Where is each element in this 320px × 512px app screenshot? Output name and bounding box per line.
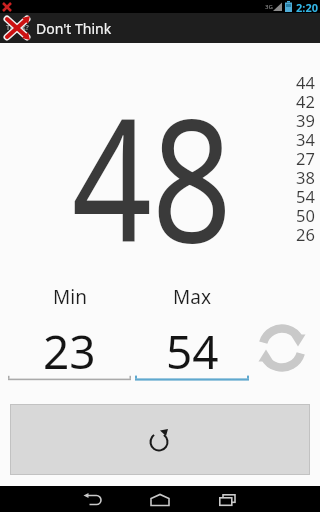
staticText: Think? xyxy=(6,23,29,33)
staticText: 44 42 39 34 27 38 54 50 26 xyxy=(262,71,315,246)
button[interactable]: 23 xyxy=(8,320,131,377)
staticText: 2:20 xyxy=(296,0,318,13)
button[interactable] xyxy=(65,487,121,512)
button[interactable]: Think? xyxy=(0,13,34,43)
staticText: 3G xyxy=(265,3,273,11)
staticText: Max xyxy=(173,284,211,306)
button[interactable] xyxy=(199,487,255,512)
button[interactable] xyxy=(132,487,188,512)
staticText: 48 xyxy=(72,59,232,292)
button[interactable] xyxy=(256,322,308,374)
staticText: 23 xyxy=(43,320,96,377)
staticText: Don't Think xyxy=(36,19,112,38)
button[interactable]: 54 xyxy=(135,320,249,377)
staticText: 54 xyxy=(166,320,219,377)
button[interactable] xyxy=(10,404,310,475)
staticText: Min xyxy=(53,284,87,306)
